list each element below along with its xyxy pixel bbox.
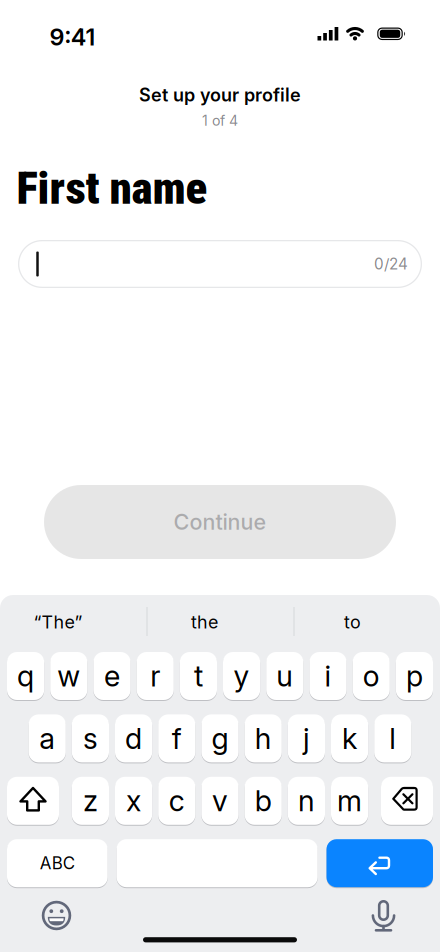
button[interactable]: r (137, 652, 174, 700)
staticText: k (342, 721, 357, 756)
button[interactable]: z (72, 777, 109, 825)
button[interactable]: b (245, 777, 282, 825)
staticText: b (255, 783, 272, 818)
button[interactable]: i (309, 652, 347, 700)
button[interactable]: s (72, 714, 109, 762)
staticText: the (191, 611, 218, 633)
staticText: i (324, 658, 331, 693)
staticText: q (17, 658, 34, 693)
staticText: Continue (173, 509, 266, 535)
staticText: v (212, 783, 228, 818)
staticText: “The” (33, 611, 82, 633)
button[interactable]: h (245, 714, 282, 762)
staticText: r (150, 658, 160, 693)
staticText: x (126, 783, 141, 818)
staticText: j (303, 721, 310, 756)
staticText: 0/24 (374, 255, 408, 273)
staticText: c (169, 783, 185, 818)
staticText: to (344, 611, 361, 633)
button[interactable]: w (50, 652, 87, 700)
button[interactable]: n (288, 777, 325, 825)
staticText: n (298, 783, 315, 818)
staticText: g (211, 721, 228, 756)
button[interactable]: g (201, 714, 239, 762)
button[interactable]: v (201, 777, 239, 825)
button[interactable]: t (180, 652, 217, 700)
button[interactable]: Return (326, 839, 433, 887)
button[interactable]: l (374, 714, 411, 762)
button[interactable]: k (331, 714, 368, 762)
button[interactable]: y (223, 652, 260, 700)
staticText: w (57, 658, 80, 693)
staticText: ABC (40, 853, 75, 873)
staticText: 1 of 4 (202, 112, 238, 129)
staticText: u (276, 658, 293, 693)
staticText: s (83, 721, 98, 756)
staticText: l (389, 721, 396, 756)
button[interactable]: j (288, 714, 325, 762)
staticText: t (194, 658, 203, 693)
button[interactable]: “The” (0, 600, 118, 644)
staticText: h (255, 721, 272, 756)
button[interactable]: to (292, 600, 412, 644)
staticText: m (337, 783, 362, 818)
button[interactable]: First name (18, 240, 422, 288)
staticText: y (234, 658, 250, 693)
button[interactable]: q (7, 652, 44, 700)
staticText: d (125, 721, 142, 756)
button[interactable]: o (353, 652, 390, 700)
button[interactable]: f (158, 714, 195, 762)
staticText: e (104, 658, 120, 693)
button[interactable]: Delete (381, 777, 433, 825)
button[interactable]: Continue (44, 485, 396, 559)
staticText: f (172, 721, 182, 756)
button[interactable]: a (29, 714, 66, 762)
staticText: a (39, 721, 55, 756)
staticText: 9:41 (50, 23, 95, 51)
button[interactable]: Emoji (39, 898, 73, 932)
button[interactable]: e (93, 652, 131, 700)
button[interactable]: Dictation (366, 893, 400, 937)
staticText: z (83, 783, 98, 818)
button[interactable]: p (396, 652, 433, 700)
button[interactable]: the (144, 600, 264, 644)
staticText: Set up your profile (139, 84, 301, 106)
staticText: First name (16, 162, 207, 215)
button[interactable]: d (115, 714, 152, 762)
button[interactable]: Shift (7, 777, 59, 825)
button[interactable]: c (158, 777, 195, 825)
staticText: o (363, 658, 380, 693)
button[interactable]: m (331, 777, 368, 825)
staticText: p (406, 658, 423, 693)
button[interactable]: ABC (7, 839, 108, 887)
button[interactable]: x (115, 777, 152, 825)
button[interactable]: u (266, 652, 303, 700)
